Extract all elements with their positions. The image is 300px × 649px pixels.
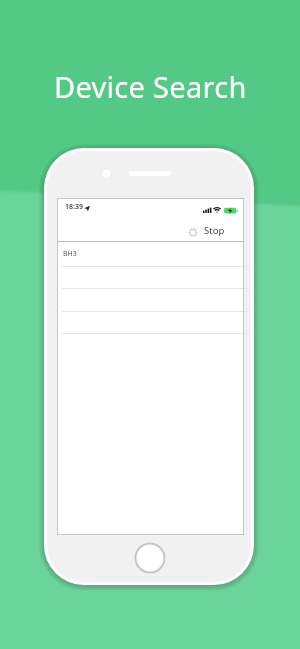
staticText: Device Search: [54, 67, 247, 106]
button[interactable]: BH3: [57, 242, 244, 266]
staticText: 18:39: [65, 202, 83, 212]
staticText: Stop: [204, 224, 225, 237]
button[interactable]: Stop: [189, 222, 225, 238]
staticText: BH3: [63, 249, 77, 259]
